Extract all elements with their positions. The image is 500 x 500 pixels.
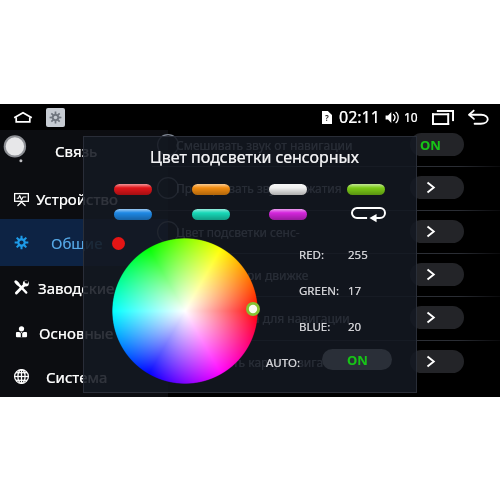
staticText: 02:11: [339, 106, 380, 128]
button[interactable]: Связь: [26, 141, 127, 161]
button[interactable]: Система: [0, 353, 168, 400]
button[interactable]: Основные: [0, 309, 168, 356]
button[interactable]: [347, 184, 385, 195]
button[interactable]: Home: [12, 108, 34, 126]
button[interactable]: [269, 184, 307, 195]
button[interactable]: Заводские: [0, 264, 168, 311]
button[interactable]: Cycle colours: [351, 207, 386, 219]
button[interactable]: [192, 209, 230, 220]
button[interactable]: Settings: [46, 108, 65, 127]
staticText: ON: [347, 351, 368, 369]
staticText: Проигрывать звуки нажатия: [176, 180, 342, 196]
button[interactable]: [269, 209, 307, 220]
button[interactable]: ON: [410, 133, 464, 156]
button[interactable]: [192, 184, 230, 195]
staticText: Цвет подсветки сенсорных: [150, 146, 359, 168]
staticText: Связь: [55, 141, 98, 161]
button[interactable]: [410, 263, 464, 286]
button[interactable]: Проигрывать звуки нажатия: [152, 166, 500, 209]
staticText: RED:: [299, 247, 325, 263]
button[interactable]: [410, 220, 464, 243]
button[interactable]: [410, 176, 464, 199]
staticText: Показывать карту навигатора: [176, 354, 350, 370]
staticText: Основные: [39, 323, 114, 343]
button[interactable]: [114, 209, 152, 220]
button[interactable]: ON: [322, 349, 392, 370]
button[interactable]: Уровень звука для навигации: [152, 296, 500, 339]
staticText: Уровень звука для навигации: [176, 310, 350, 326]
staticText: Смешивать звук от навигации: [176, 137, 353, 153]
button[interactable]: [114, 184, 152, 195]
staticText: Громкость при движке: [176, 267, 309, 283]
button[interactable]: [410, 306, 464, 329]
button[interactable]: [1, 133, 29, 161]
staticText: BLUE:: [299, 319, 331, 335]
staticText: Система: [46, 367, 108, 387]
button[interactable]: Recent apps: [430, 106, 456, 128]
staticText: ON: [420, 136, 441, 154]
button[interactable]: Показывать карту навигатора: [152, 340, 500, 383]
staticText: 10: [404, 109, 418, 125]
button[interactable]: [410, 350, 464, 373]
staticText: GREEN:: [299, 283, 340, 299]
image[interactable]: Colour wheel: [112, 238, 258, 384]
staticText: Общие: [51, 233, 103, 253]
button[interactable]: Общие: [0, 219, 168, 266]
staticText: AUTO:: [266, 355, 300, 371]
button[interactable]: Цвет подсветки сенс-: [152, 210, 500, 253]
staticText: 20: [348, 319, 362, 335]
staticText: Цвет подсветки сенс-: [176, 224, 300, 240]
staticText: Устройство: [36, 189, 118, 209]
staticText: Заводские: [38, 278, 115, 298]
staticText: 255: [348, 247, 368, 263]
staticText: ?: [325, 112, 329, 123]
button[interactable]: Back: [466, 106, 492, 128]
button[interactable]: Устройство: [0, 175, 168, 222]
button[interactable]: Громкость при движке: [152, 253, 500, 296]
staticText: 17: [348, 283, 362, 299]
button[interactable]: Смешивать звук от навигации: [152, 123, 500, 166]
